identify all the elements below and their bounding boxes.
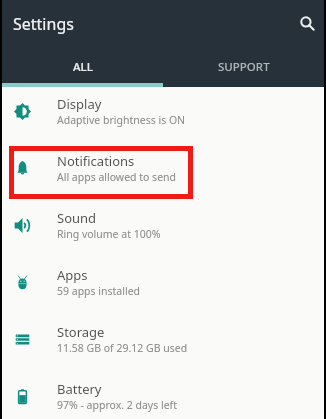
button[interactable]: ALL xyxy=(2,45,163,87)
staticText: Battery xyxy=(57,380,102,398)
staticText: Apps xyxy=(57,266,88,284)
staticText: Settings xyxy=(13,13,74,35)
button[interactable]: Notifications xyxy=(2,144,324,201)
staticText: 59 apps installed xyxy=(57,284,141,298)
button[interactable]: Search xyxy=(294,9,322,37)
staticText: All apps allowed to send xyxy=(57,170,177,184)
button[interactable]: SUPPORT xyxy=(163,45,324,87)
button[interactable]: Battery xyxy=(2,372,324,419)
button[interactable]: Apps xyxy=(2,258,324,315)
staticText: Storage xyxy=(57,323,105,341)
button[interactable]: Sound xyxy=(2,201,324,258)
staticText: Ring volume at 100% xyxy=(57,227,161,241)
staticText: SUPPORT xyxy=(218,59,270,75)
staticText: Display xyxy=(57,95,102,113)
staticText: ALL xyxy=(73,59,93,75)
button[interactable]: Display xyxy=(2,87,324,144)
staticText: 11.58 GB of 29.12 GB used xyxy=(57,341,188,355)
staticText: Notifications xyxy=(57,152,135,170)
button[interactable]: Storage xyxy=(2,315,324,372)
staticText: Adaptive brightness is ON xyxy=(57,113,186,127)
staticText: Sound xyxy=(57,209,97,227)
staticText: 97% - approx. 2 days left xyxy=(57,398,177,412)
